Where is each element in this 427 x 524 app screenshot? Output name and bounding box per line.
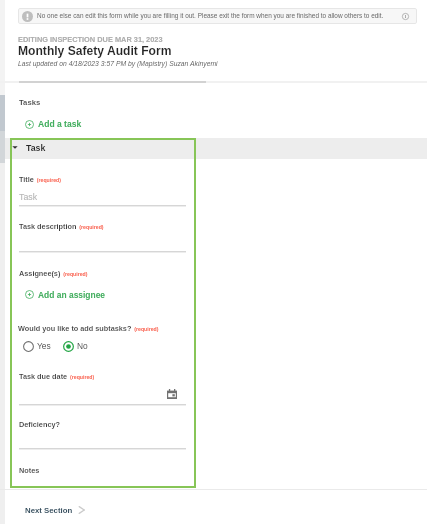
button[interactable]: Yes bbox=[23, 340, 51, 353]
staticText: Add a task bbox=[38, 119, 82, 129]
staticText: Task bbox=[26, 143, 46, 153]
staticText: Last updated on 4/18/2023 3:57 PM by (Ma… bbox=[18, 60, 218, 68]
button[interactable]: Add an assignee bbox=[25, 290, 106, 299]
staticText: No one else can edit this form while you… bbox=[37, 12, 384, 19]
staticText: Title (required) bbox=[19, 175, 61, 183]
button[interactable]: More information bbox=[402, 13, 409, 20]
staticText: Monthly Safety Audit Form bbox=[18, 44, 172, 58]
staticText: Add an assignee bbox=[38, 290, 106, 299]
button[interactable] bbox=[18, 8, 417, 24]
staticText: Task due date (required) bbox=[19, 372, 95, 380]
staticText: Yes bbox=[37, 341, 51, 350]
button[interactable]: Next Section bbox=[25, 505, 88, 515]
staticText: Notes bbox=[19, 466, 40, 474]
staticText: Task description (required) bbox=[19, 222, 104, 230]
button[interactable]: Add a task bbox=[25, 119, 82, 129]
staticText: No bbox=[77, 341, 88, 350]
staticText: Deficiency? bbox=[19, 420, 60, 428]
button[interactable]: No bbox=[63, 340, 88, 353]
staticText: Next Section bbox=[25, 506, 73, 515]
staticText: Task bbox=[19, 192, 38, 202]
staticText: Tasks bbox=[19, 98, 41, 107]
staticText: EDITING INSPECTION DUE MAR 31, 2023 bbox=[18, 35, 163, 43]
button[interactable]: Pick date bbox=[167, 389, 177, 399]
button[interactable]: Task bbox=[12, 138, 112, 158]
staticText: Assignee(s) (required) bbox=[19, 269, 88, 277]
staticText: Would you like to add subtasks? (require… bbox=[18, 324, 159, 332]
